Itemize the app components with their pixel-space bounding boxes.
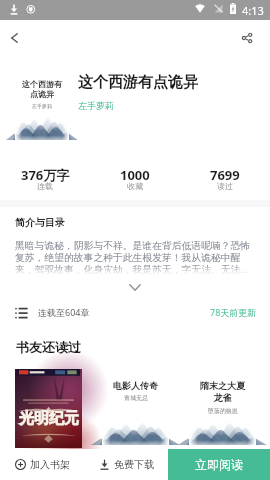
button[interactable]: Back <box>1 25 27 51</box>
staticText: 7699 <box>210 166 240 184</box>
staticText: 青城无忌 <box>124 394 148 402</box>
button[interactable]: 电影人传奇 <box>102 369 169 448</box>
button[interactable]: Share <box>234 25 260 51</box>
staticText: 左手萝莉 <box>78 100 114 111</box>
staticText: 免费下载 <box>114 458 154 471</box>
button[interactable]: 加入书架 <box>0 449 84 480</box>
staticText: 1000 <box>120 166 150 184</box>
staticText: 这个西游有点诡异 <box>78 73 198 92</box>
button[interactable]: 光明纪元 <box>15 369 82 448</box>
staticText: 这个西游有 点诡异 <box>22 79 62 100</box>
staticText: 加入书架 <box>30 458 70 471</box>
staticText: 收藏 <box>127 181 143 191</box>
staticText: 立即阅读 <box>195 457 243 472</box>
staticText: 4:13 <box>242 3 264 18</box>
button[interactable]: 隋末之大夏 龙雀 <box>189 369 256 448</box>
button[interactable]: 连载至604章 <box>0 300 270 324</box>
staticText: 光明纪元 <box>19 409 79 428</box>
staticText: 读过 <box>217 181 233 191</box>
staticText: 78天前更新 <box>210 306 257 318</box>
button[interactable]: Expand description <box>123 278 147 296</box>
staticText: 左手萝莉 <box>32 103 52 109</box>
staticText: 黑暗与诡秘，阴影与不祥。是谁在背后低语呢喃？恐怖复苏，绝望的故事之种于此生根发芽… <box>15 240 258 276</box>
staticText: 简介与目录 <box>15 216 65 229</box>
button[interactable]: 立即阅读 <box>168 449 270 480</box>
staticText: 电影人传奇 <box>113 380 158 391</box>
button[interactable]: 免费下载 <box>84 449 168 480</box>
staticText: 隋末之大夏 龙雀 <box>200 380 245 404</box>
staticText: 书友还读过 <box>16 339 81 355</box>
staticText: 堕落的狼崽 <box>208 407 238 415</box>
staticText: 376万字 <box>21 166 70 184</box>
staticText: 连载至604章 <box>38 306 90 318</box>
staticText: 连载 <box>37 181 53 191</box>
